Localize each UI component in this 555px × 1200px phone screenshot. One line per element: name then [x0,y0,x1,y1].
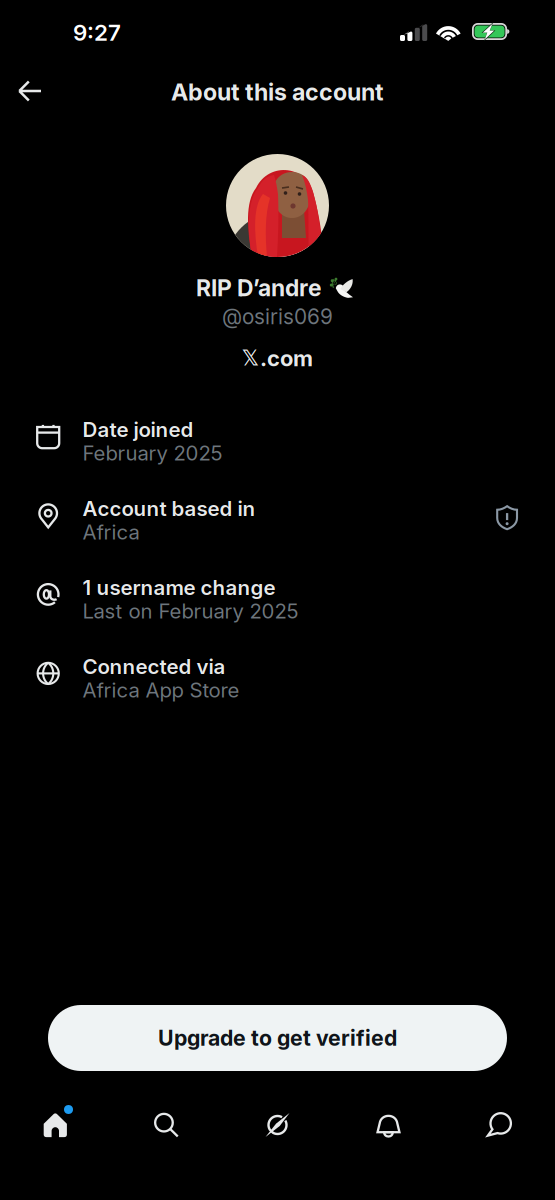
staticText: Africa App Store [82,678,239,702]
staticText: Upgrade to get verified [158,1025,397,1051]
button[interactable]: Messages [444,1086,555,1164]
staticText: Account based in [82,496,255,521]
staticText: Last on February 2025 [82,599,298,623]
staticText: @osiris069 [222,304,333,329]
button[interactable]: Search [111,1086,222,1164]
staticText: 9:27 [73,19,121,46]
button[interactable]: Back [6,68,54,114]
staticText: About this account [171,78,384,106]
staticText: Africa [82,520,139,544]
staticText: RIP D’andre [196,274,322,302]
button[interactable]: Grok [222,1086,333,1164]
button[interactable]: Upgrade to get verified [48,1005,507,1071]
staticText: 𝕏 [242,346,259,370]
button[interactable]: Notifications [333,1086,444,1164]
staticText: 1 username change [82,575,275,600]
staticText: .com [260,345,313,372]
button[interactable]: Home [0,1086,111,1164]
button[interactable]: Account warning [496,505,518,530]
staticText: Connected via [82,654,225,679]
staticText: February 2025 [82,441,222,465]
staticText: Date joined [82,417,193,442]
